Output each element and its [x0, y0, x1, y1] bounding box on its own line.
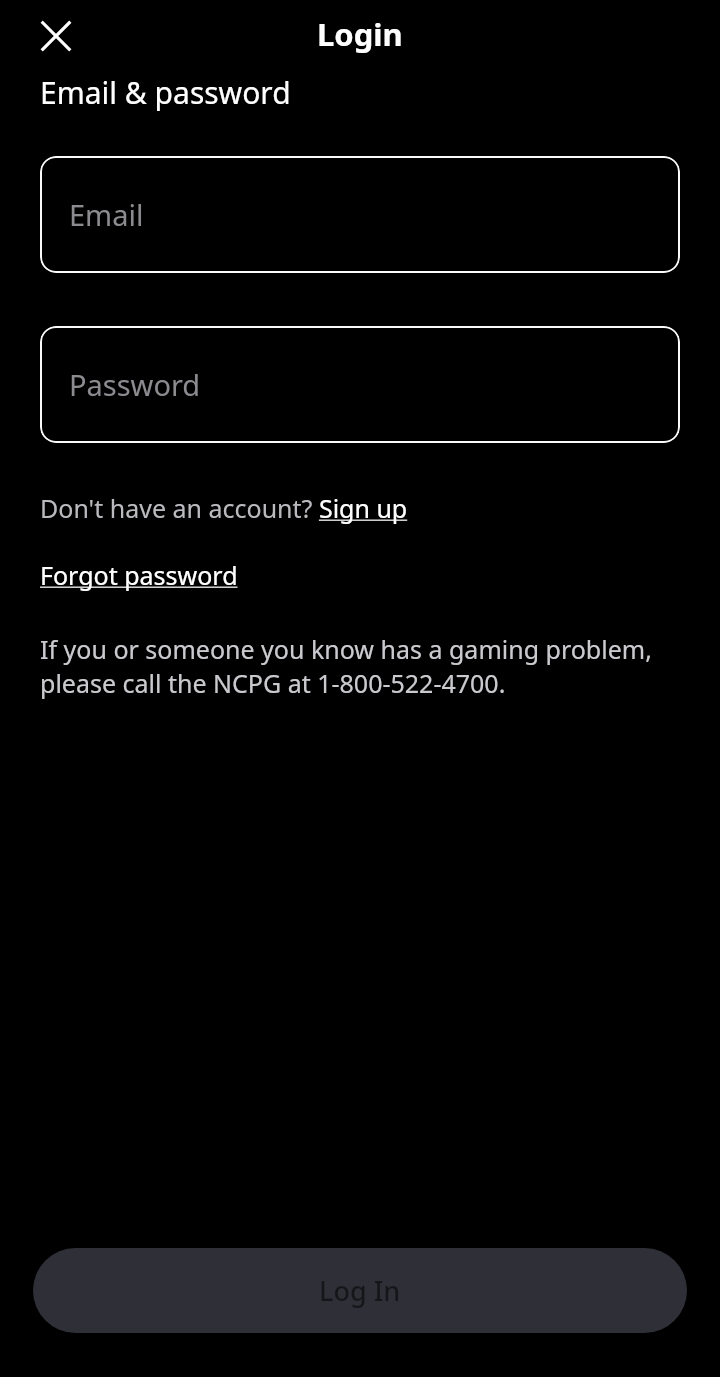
button[interactable]: Forgot password — [40, 558, 238, 592]
staticText: Forgot password — [40, 558, 238, 592]
button[interactable]: Log In — [33, 1248, 687, 1333]
button[interactable]: Don't have an account? Sign up — [40, 491, 408, 525]
button[interactable]: Email — [40, 156, 680, 273]
staticText: Password — [69, 365, 201, 404]
staticText: Don't have an account? Sign up — [40, 491, 408, 525]
staticText: Email & password — [40, 72, 291, 113]
staticText: Login — [317, 13, 403, 55]
button[interactable]: Password — [40, 326, 680, 443]
staticText: Email — [69, 195, 144, 234]
staticText: If you or someone you know has a gaming … — [40, 632, 680, 700]
staticText: Log In — [319, 1272, 401, 1309]
button[interactable]: Close — [30, 10, 82, 62]
